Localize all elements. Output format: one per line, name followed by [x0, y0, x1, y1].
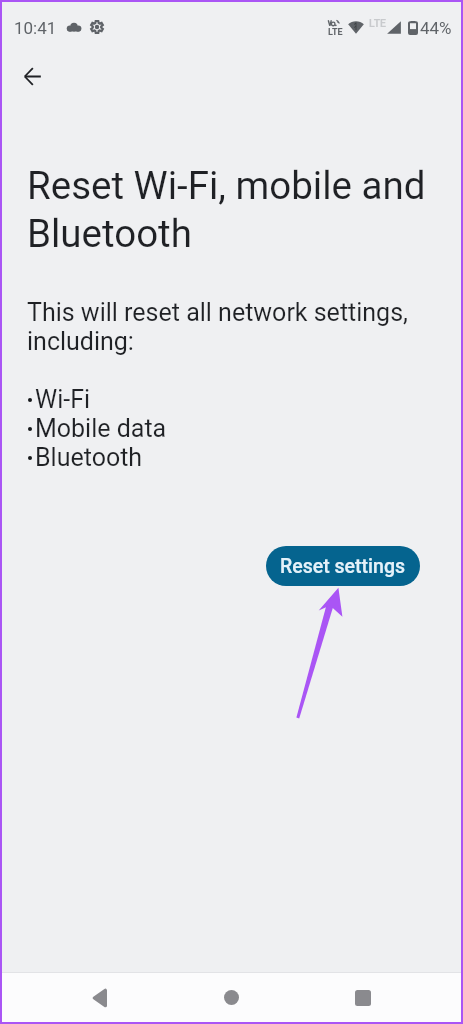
staticText: Mobile data [35, 414, 167, 443]
staticText: Wi-Fi [35, 385, 91, 414]
staticText: Bluetooth [35, 443, 143, 472]
staticText: 10:41 [14, 18, 57, 38]
staticText: Reset settings [280, 555, 406, 578]
button[interactable]: Reset settings [266, 546, 420, 586]
staticText: 44% [420, 18, 452, 38]
staticText: Reset Wi-Fi, mobile and Bluetooth [27, 161, 429, 257]
staticText: LTE [328, 27, 343, 38]
button[interactable]: Recent apps [340, 975, 385, 1020]
staticText: LTE [369, 17, 386, 29]
button[interactable]: Back [11, 55, 54, 98]
button[interactable]: Home [209, 975, 254, 1020]
button[interactable]: Back [77, 975, 122, 1020]
staticText: This will reset all network settings, in… [27, 298, 429, 356]
